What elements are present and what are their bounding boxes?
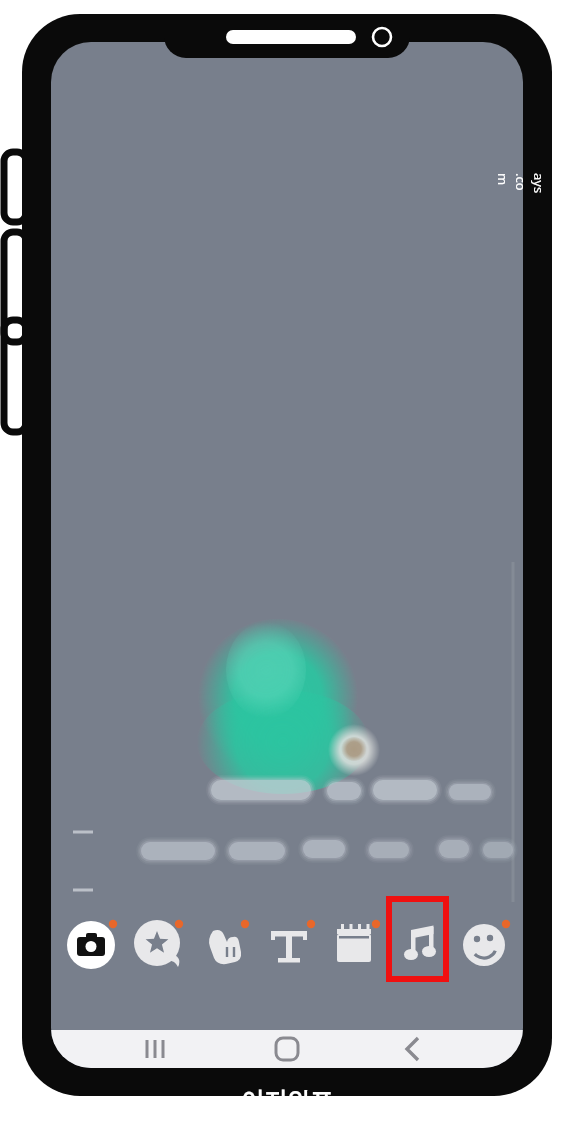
button[interactable]: Text	[263, 919, 315, 971]
button[interactable]: Camera	[65, 919, 117, 971]
button[interactable]: Draw	[197, 919, 249, 971]
button[interactable]: Calendar	[328, 919, 380, 971]
staticText: ei.reidays.com	[494, 173, 574, 195]
staticText: 이지인포	[241, 1086, 333, 1115]
button[interactable]: Emoji	[458, 919, 510, 971]
button[interactable]: Stickers	[131, 919, 183, 971]
button[interactable]: Music	[394, 919, 446, 971]
